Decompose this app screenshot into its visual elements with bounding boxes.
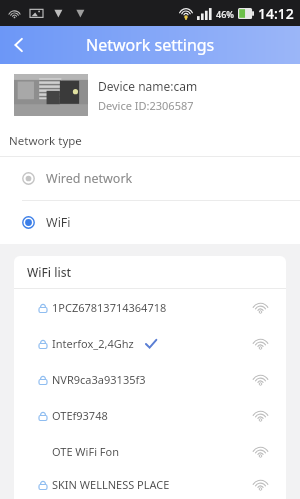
staticText: SKIN WELLNESS PLACE — [52, 477, 170, 492]
staticText: Device ID:2306587 — [98, 98, 194, 113]
button[interactable]: Interfox_2,4Ghz — [14, 325, 286, 361]
button[interactable]: OTEf93748 — [14, 397, 286, 433]
staticText: WiFi — [46, 214, 71, 231]
staticText: 14:12 — [258, 4, 294, 23]
staticText: Wired network — [46, 170, 133, 187]
button[interactable]: Device name:cam — [0, 64, 300, 126]
staticText: OTEf93748 — [52, 408, 108, 423]
staticText: OTE WiFi Fon — [52, 444, 119, 459]
staticText: 46% — [216, 8, 234, 20]
staticText: WiFi list — [27, 264, 72, 280]
staticText: Network settings — [86, 34, 215, 56]
staticText: Network type — [9, 133, 82, 149]
button[interactable]: NVR9ca3a93135f3 — [14, 361, 286, 397]
button[interactable]: 1PCZ67813714364718 — [14, 289, 286, 325]
staticText: Device name:cam — [98, 78, 198, 94]
staticText: NVR9ca3a93135f3 — [52, 372, 146, 387]
button[interactable]: OTE WiFi Fon — [14, 433, 286, 469]
button[interactable]: Back — [0, 26, 38, 64]
button[interactable]: SKIN WELLNESS PLACE — [14, 469, 286, 499]
button[interactable]: WiFi — [0, 201, 300, 244]
button[interactable]: Wired network — [0, 157, 300, 200]
staticText: Interfox_2,4Ghz — [52, 336, 134, 351]
staticText: 1PCZ67813714364718 — [52, 300, 167, 315]
